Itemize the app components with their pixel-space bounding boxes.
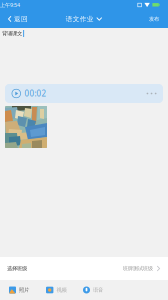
button[interactable]: 语音 xyxy=(80,280,111,300)
staticText: 班牌测试班级 xyxy=(123,265,153,272)
staticText: 语文作业 xyxy=(66,15,94,23)
staticText: 语音 xyxy=(93,287,103,293)
button[interactable]: 语文作业 xyxy=(52,10,116,28)
button[interactable]: Play audio attachment, 00:02 xyxy=(5,84,163,103)
staticText: 返回 xyxy=(14,15,28,23)
button[interactable]: 发布 xyxy=(144,10,164,28)
staticText: 照片 xyxy=(19,287,29,293)
staticText: 上午9:54 xyxy=(0,1,20,9)
button[interactable]: 视频 xyxy=(43,280,74,300)
button[interactable]: 背诵课文 xyxy=(0,28,168,39)
button[interactable]: Attached photo xyxy=(5,106,47,148)
staticText: 背诵课文 xyxy=(2,30,22,37)
staticText: 视频 xyxy=(56,287,66,293)
staticText: 00:02 xyxy=(24,88,46,99)
button[interactable]: 选择班级 xyxy=(0,257,168,280)
button[interactable]: 照片 xyxy=(6,280,37,300)
staticText: 选择班级 xyxy=(7,265,27,272)
button[interactable]: 返回 xyxy=(4,10,32,28)
staticText: 发布 xyxy=(149,16,159,22)
